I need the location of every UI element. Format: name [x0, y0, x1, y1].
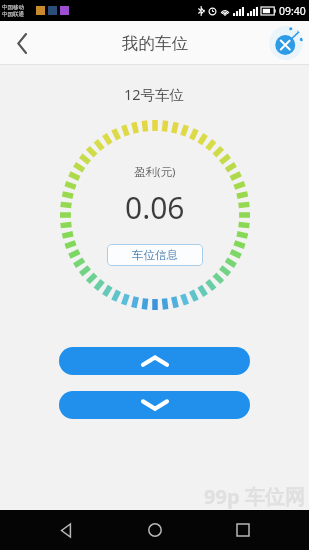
staticText: 盈利(元) — [134, 164, 176, 180]
button[interactable]: Raise — [59, 347, 250, 375]
staticText: 09:40 — [279, 4, 306, 18]
staticText: 0.06 — [125, 187, 185, 228]
staticText: 中国联通 — [2, 11, 24, 18]
button[interactable]: Lower — [59, 391, 250, 419]
staticText: 99p 车位网 — [204, 483, 305, 510]
button[interactable]: Home — [133, 510, 177, 550]
staticText: 我的车位 — [122, 33, 188, 54]
button[interactable]: 车位信息 — [107, 244, 203, 266]
button[interactable]: Back — [0, 21, 44, 65]
staticText: 中国移动 — [2, 4, 24, 11]
button[interactable]: Share — [269, 26, 303, 60]
staticText: 12号车位 — [124, 84, 185, 104]
button[interactable]: Back — [44, 510, 88, 550]
button[interactable]: Recents — [221, 510, 265, 550]
staticText: 车位信息 — [132, 248, 178, 262]
